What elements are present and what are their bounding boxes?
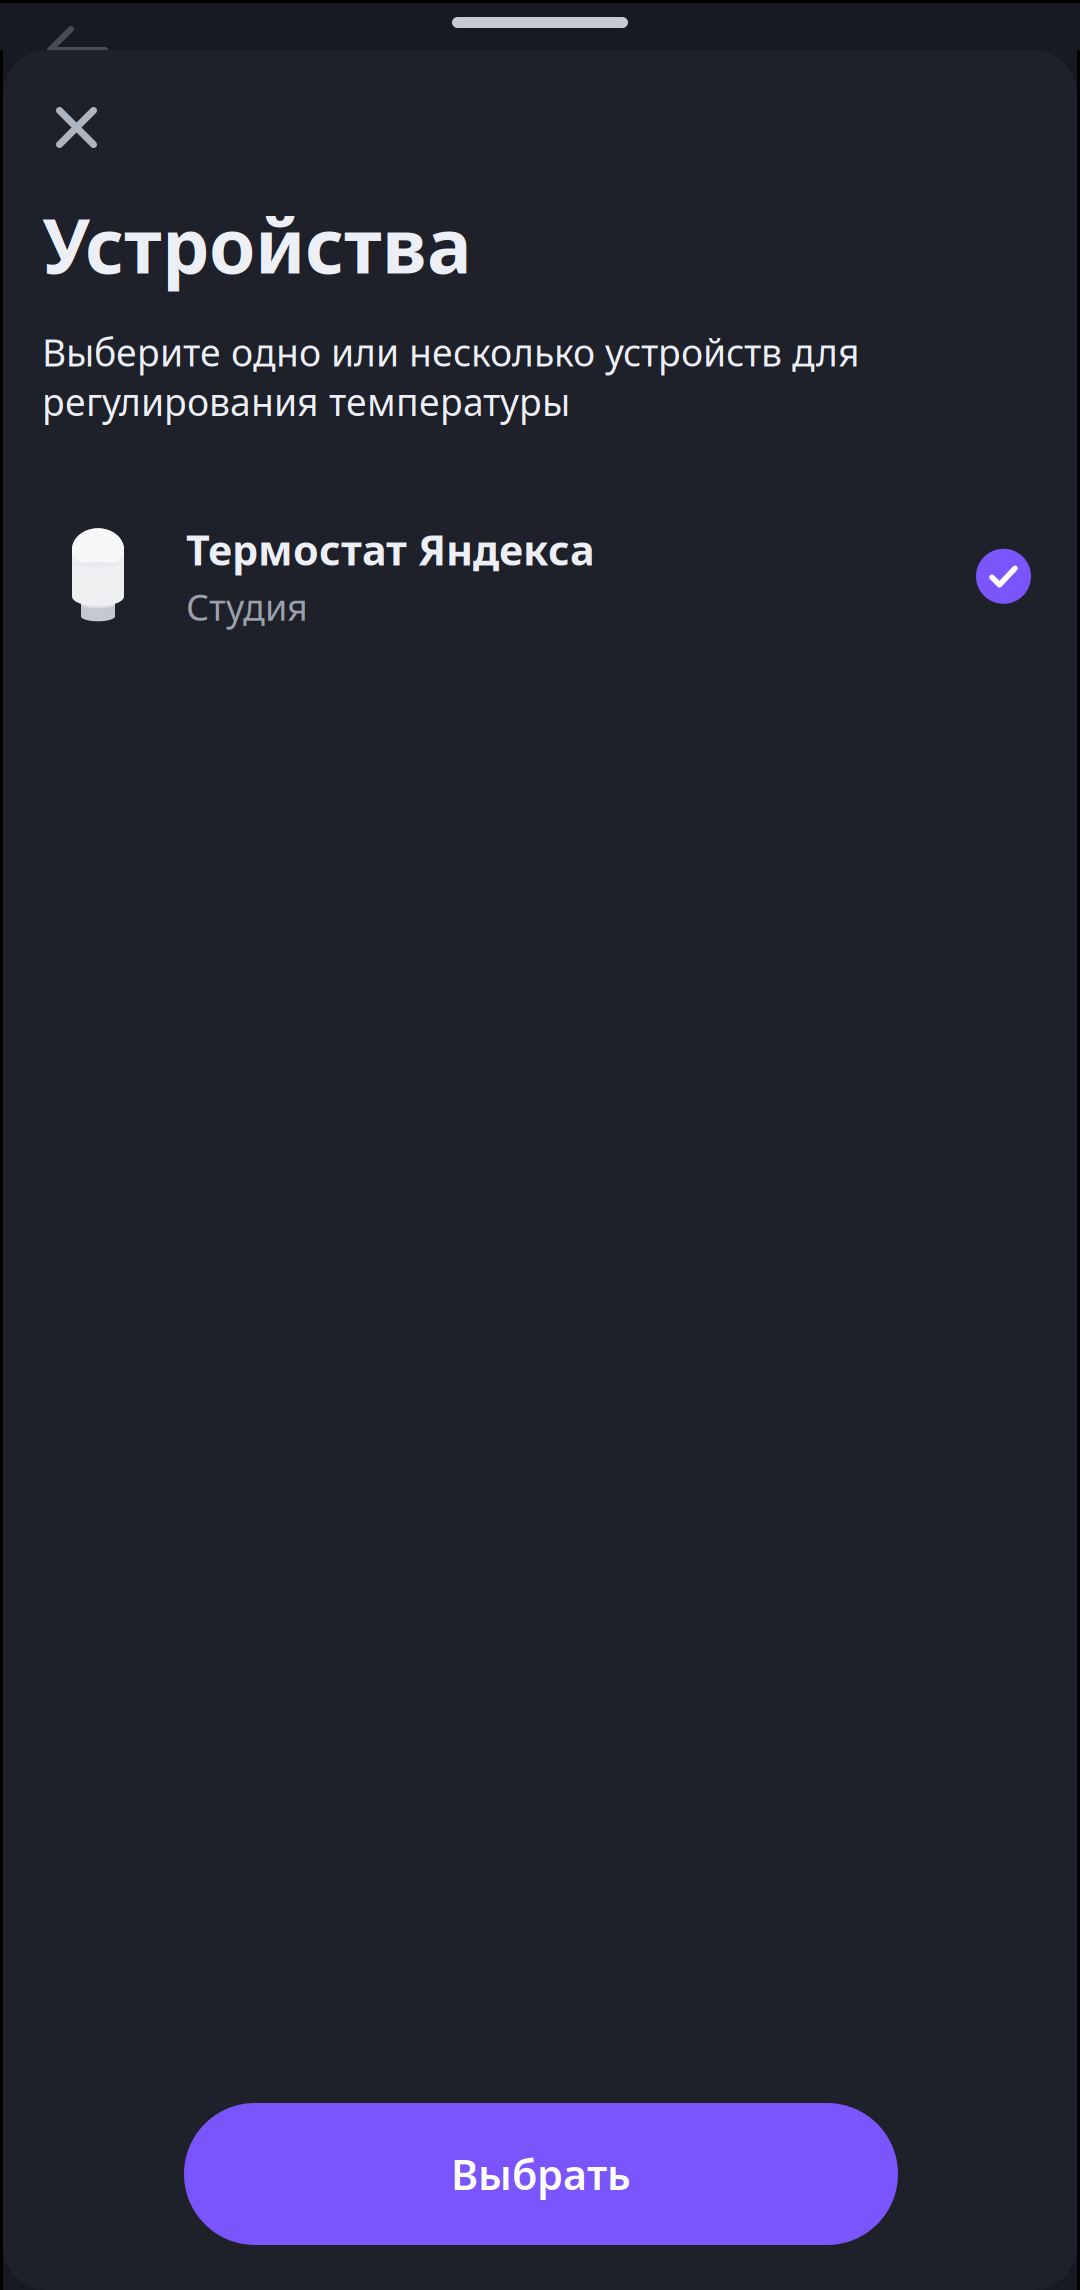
staticText: Устройства (42, 195, 472, 294)
staticText: Студия (186, 583, 308, 631)
staticText: Термостат Яндекса (186, 522, 595, 577)
staticText: Выберите одно или несколько устройств дл… (42, 327, 860, 426)
button[interactable]: Закрыть (3, 50, 123, 174)
staticText: Выбрать (451, 2147, 631, 2201)
button[interactable]: Выбрать (184, 2103, 898, 2245)
button[interactable]: Термостат Яндекса (3, 508, 1077, 644)
